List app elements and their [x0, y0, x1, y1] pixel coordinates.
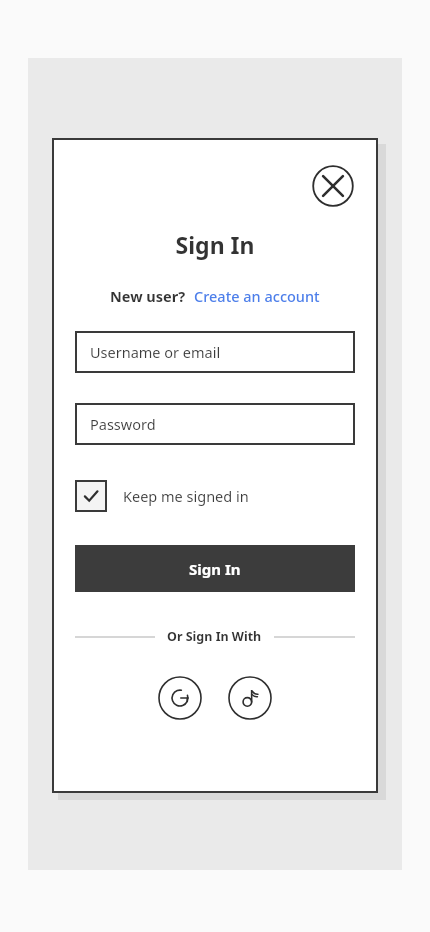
button[interactable]: Sign In: [75, 545, 355, 592]
button[interactable]: Keep me signed in: [75, 480, 249, 512]
button[interactable]: Create an account: [194, 286, 320, 306]
staticText: Password: [90, 414, 156, 434]
button[interactable]: Password: [75, 403, 355, 445]
staticText: Sign In: [189, 559, 241, 579]
button[interactable]: Username or email: [75, 331, 355, 373]
button[interactable]: Close: [312, 165, 354, 207]
staticText: Username or email: [90, 342, 221, 362]
staticText: New user?: [110, 286, 186, 306]
staticText: Sign In: [52, 229, 378, 260]
staticText: Keep me signed in: [123, 486, 249, 506]
staticText: Or Sign In With: [167, 628, 262, 645]
button[interactable]: Sign in with Google: [158, 676, 202, 720]
button[interactable]: Sign in with TikTok: [228, 676, 272, 720]
staticText: Create an account: [194, 286, 320, 306]
